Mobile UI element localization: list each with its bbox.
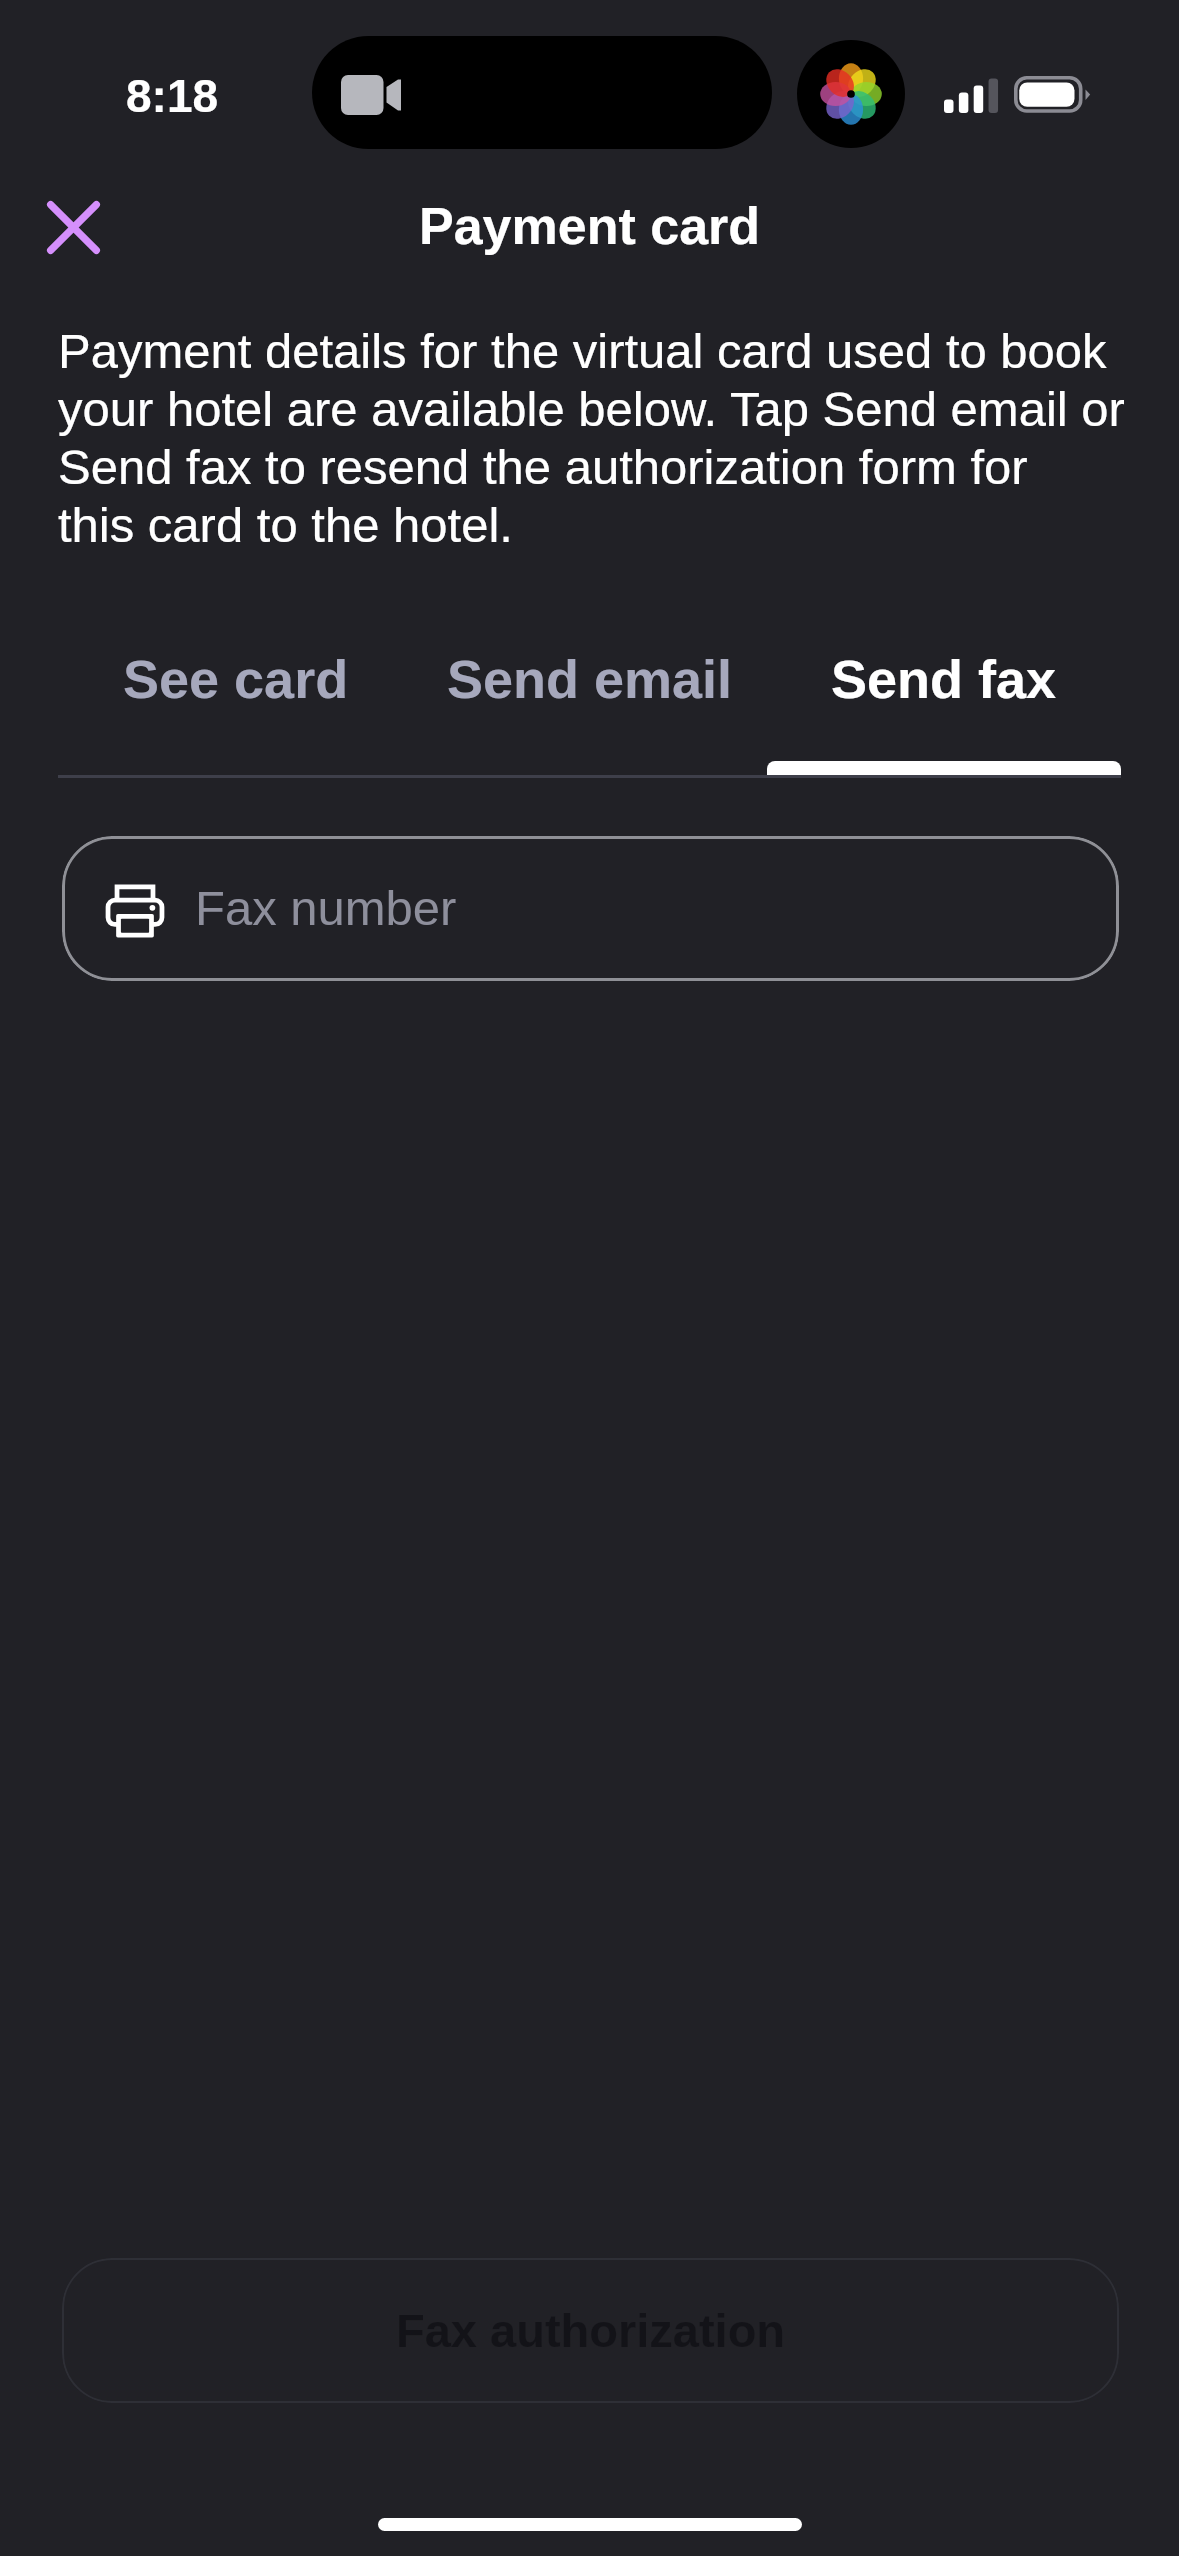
staticText: Fax authorization — [396, 2304, 786, 2357]
staticText: Fax number — [195, 881, 457, 936]
staticText: See card — [123, 649, 349, 709]
staticText: Send fax — [831, 649, 1057, 709]
button[interactable]: Fax authorization — [62, 2258, 1119, 2403]
staticText: 8:18 — [126, 70, 219, 121]
button[interactable]: Fax number — [62, 836, 1119, 981]
button[interactable]: See card — [58, 628, 413, 775]
staticText: Payment card — [419, 197, 761, 255]
button[interactable]: Send email — [413, 628, 767, 775]
button[interactable]: Close — [20, 174, 126, 280]
button[interactable]: Send fax — [767, 628, 1121, 775]
staticText: Payment details for the virtual card use… — [58, 322, 1179, 554]
staticText: Send email — [447, 649, 733, 709]
